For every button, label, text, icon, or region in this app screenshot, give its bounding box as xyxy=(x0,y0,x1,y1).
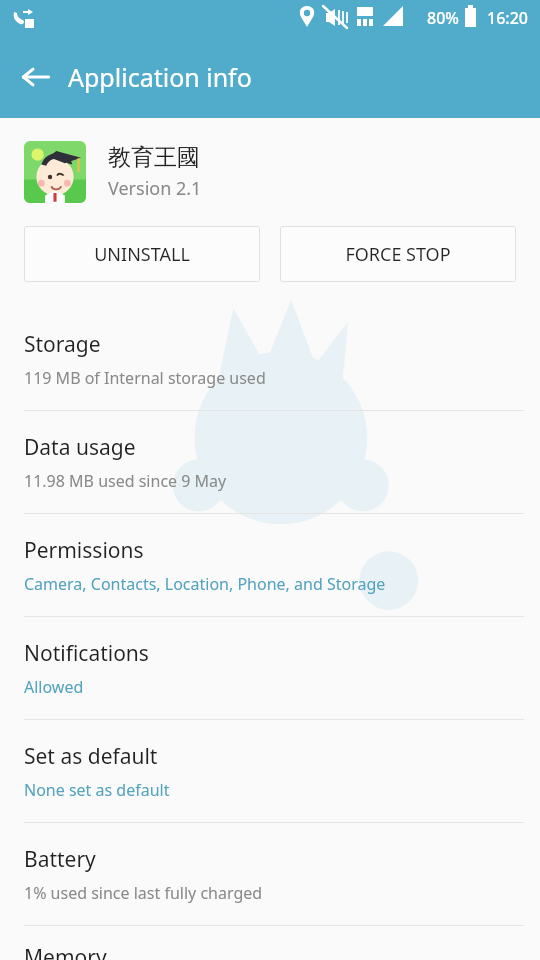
button[interactable]: Set as default xyxy=(0,720,540,823)
staticText: UNINSTALL xyxy=(94,242,190,267)
staticText: Data usage xyxy=(24,433,136,462)
button[interactable]: Battery xyxy=(0,823,540,926)
button[interactable]: Data usage xyxy=(0,411,540,514)
button[interactable]: FORCE STOP xyxy=(280,226,516,282)
button[interactable]: UNINSTALL xyxy=(24,226,260,282)
button[interactable]: Notifications xyxy=(0,617,540,720)
button[interactable]: Permissions xyxy=(0,514,540,617)
staticText: None set as default xyxy=(24,779,170,801)
staticText: 119 MB of Internal storage used xyxy=(24,367,266,389)
staticText: Battery xyxy=(24,845,96,874)
staticText: 1% used since last fully charged xyxy=(24,882,263,904)
staticText: Set as default xyxy=(24,742,158,771)
staticText: 教育王國 xyxy=(108,143,200,172)
staticText: Permissions xyxy=(24,536,144,565)
staticText: Version 2.1 xyxy=(108,176,202,201)
staticText: FORCE STOP xyxy=(345,242,451,267)
staticText: 16:20 xyxy=(487,7,528,29)
staticText: Allowed xyxy=(24,676,84,698)
staticText: Camera, Contacts, Location, Phone, and S… xyxy=(24,573,386,595)
button[interactable]: Back xyxy=(10,51,62,103)
staticText: Storage xyxy=(24,330,101,359)
staticText: 80% xyxy=(427,7,459,29)
staticText: 11.98 MB used since 9 May xyxy=(24,470,227,492)
button[interactable]: Storage xyxy=(0,308,540,411)
staticText: Application info xyxy=(68,60,252,94)
staticText: Notifications xyxy=(24,639,149,668)
staticText: Memory xyxy=(24,943,107,960)
